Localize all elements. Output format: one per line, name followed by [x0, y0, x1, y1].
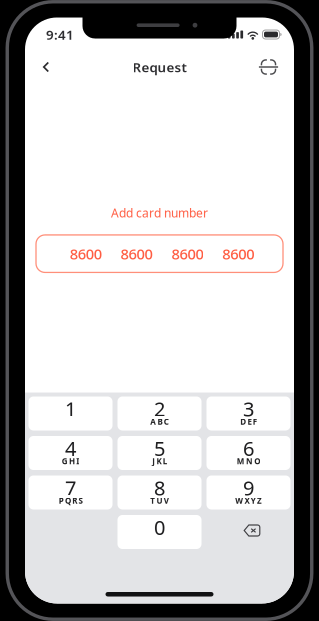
staticText: 2 — [154, 395, 165, 422]
staticText: Add card number — [111, 205, 208, 221]
staticText: PQRS — [59, 495, 82, 506]
staticText: 8600 — [121, 244, 153, 263]
staticText: 4 — [65, 435, 76, 461]
button[interactable]: 8600 — [36, 235, 283, 272]
staticText: 0 — [154, 514, 165, 540]
staticText: 7 — [65, 474, 76, 501]
staticText: MNO — [237, 456, 260, 466]
staticText: 9:41 — [46, 26, 74, 43]
button[interactable]: 9 — [206, 475, 290, 509]
button[interactable]: 7 — [28, 475, 112, 509]
button[interactable]: 2 — [117, 396, 201, 430]
staticText: 9 — [243, 474, 254, 501]
staticText: 1 — [65, 395, 76, 422]
button[interactable]: 6 — [206, 436, 290, 470]
staticText: 3 — [243, 395, 254, 422]
button[interactable]: 3 — [206, 396, 290, 430]
button[interactable]: 1 — [28, 396, 112, 430]
staticText: 6 — [243, 435, 254, 461]
staticText: GHI — [62, 456, 79, 466]
button[interactable]: 0 — [117, 515, 201, 549]
staticText: 8600 — [171, 244, 203, 263]
staticText: JKL — [152, 456, 167, 466]
staticText: WXYZ — [235, 495, 262, 506]
staticText: 8600 — [222, 244, 254, 263]
button[interactable]: Delete — [206, 515, 290, 549]
button[interactable]: 8 — [117, 475, 201, 509]
button[interactable]: Scan card — [250, 50, 286, 84]
staticText: TUV — [150, 495, 169, 506]
button[interactable]: 5 — [117, 436, 201, 470]
staticText: Request — [132, 58, 186, 76]
button[interactable]: Back — [28, 50, 64, 84]
staticText: 5 — [154, 435, 165, 461]
staticText: 8600 — [70, 244, 102, 263]
button[interactable]: 4 — [28, 436, 112, 470]
staticText: DEF — [240, 416, 257, 427]
staticText: 8 — [154, 474, 165, 501]
staticText: ABC — [150, 416, 169, 427]
